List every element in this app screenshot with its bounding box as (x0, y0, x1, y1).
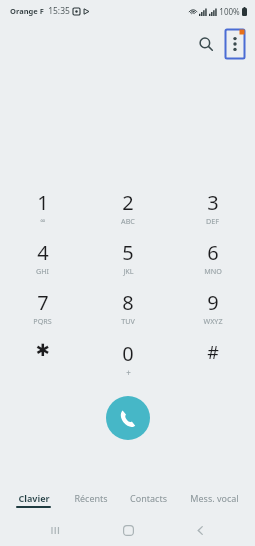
staticText: 8 (122, 289, 134, 316)
staticText: ✱ (35, 340, 50, 360)
button[interactable]: 7 (0, 286, 85, 336)
button[interactable]: 2 (85, 186, 170, 236)
staticText: PQRS (33, 316, 52, 326)
staticText: MNO (204, 266, 222, 276)
button[interactable]: More options (225, 29, 245, 59)
staticText: ABC (121, 216, 135, 226)
button[interactable]: ✱ (0, 336, 85, 382)
staticText: 1 (37, 189, 49, 216)
button[interactable]: 4 (0, 236, 85, 286)
button[interactable]: Mess. vocal (188, 490, 241, 510)
button[interactable]: 5 (85, 236, 170, 286)
staticText: JKL (123, 266, 134, 276)
staticText: Récents (74, 492, 108, 504)
staticText: GHI (36, 266, 49, 276)
button[interactable]: 8 (85, 286, 170, 336)
staticText: ∞ (40, 216, 46, 224)
staticText: 3 (207, 189, 219, 216)
staticText: 15:35 (48, 5, 70, 17)
staticText: 7 (37, 289, 49, 316)
button[interactable]: Home (111, 515, 145, 546)
button[interactable]: 6 (170, 236, 255, 286)
staticText: Contacts (130, 492, 167, 504)
button[interactable]: # (170, 336, 255, 382)
staticText: 4 (37, 239, 49, 266)
button[interactable]: Recent apps (38, 515, 72, 546)
staticText: 6 (207, 239, 219, 266)
staticText: Mess. vocal (190, 492, 239, 504)
staticText: DEF (206, 216, 219, 226)
button[interactable]: Back (183, 515, 217, 546)
button[interactable]: 0 (85, 336, 170, 382)
button[interactable]: Call (106, 396, 150, 440)
staticText: 9 (207, 289, 219, 316)
staticText: 0 (122, 340, 134, 367)
button[interactable]: Search (191, 29, 221, 59)
button[interactable]: Récents (72, 490, 110, 510)
button[interactable]: Clavier (14, 490, 53, 510)
button[interactable]: 3 (170, 186, 255, 236)
staticText: WXYZ (203, 316, 223, 326)
button[interactable]: Contacts (128, 490, 169, 510)
staticText: 2 (122, 189, 134, 216)
staticText: Clavier (18, 492, 50, 504)
button[interactable]: 1 (0, 186, 85, 236)
staticText: # (207, 340, 219, 365)
staticText: 5 (122, 239, 134, 266)
staticText: Orange F (10, 6, 44, 16)
staticText: + (126, 367, 131, 378)
staticText: 100% (219, 6, 240, 17)
staticText: TUV (121, 316, 135, 326)
button[interactable]: 9 (170, 286, 255, 336)
